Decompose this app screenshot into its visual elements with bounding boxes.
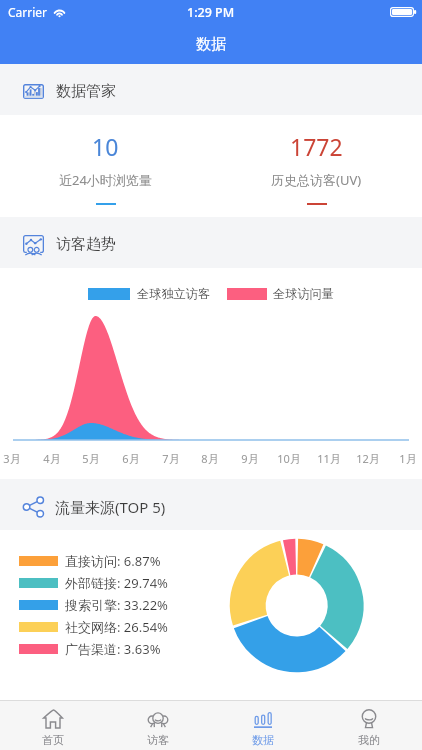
staticText: 全球独立访客 — [137, 286, 211, 301]
staticText: 1月 — [399, 451, 417, 466]
button[interactable]: 1772 — [211, 115, 422, 217]
staticText: 9月 — [241, 451, 259, 466]
staticText: 直接访问: 6.87% — [65, 552, 161, 570]
staticText: 全球访问量 — [273, 286, 334, 301]
button[interactable]: 访客 — [105, 701, 210, 750]
staticText: 搜索引擎: 33.22% — [65, 596, 168, 614]
staticText: 1772 — [290, 131, 343, 162]
staticText: 数据 — [196, 35, 226, 54]
staticText: 首页 — [42, 733, 64, 747]
staticText: 我的 — [358, 733, 380, 747]
staticText: 访客趋势 — [56, 235, 116, 254]
staticText: 10 — [92, 131, 119, 162]
staticText: Carrier — [8, 4, 48, 20]
staticText: 5月 — [82, 451, 100, 466]
button[interactable]: 首页 — [0, 701, 105, 750]
staticText: 4月 — [43, 451, 61, 466]
button[interactable]: 直接访问: 6.87% — [19, 550, 161, 572]
staticText: 3月 — [3, 451, 21, 466]
staticText: 流量来源(TOP 5) — [55, 497, 166, 517]
staticText: 12月 — [356, 451, 380, 466]
button[interactable]: 外部链接: 29.74% — [19, 572, 168, 594]
button[interactable]: 10 — [0, 115, 211, 217]
staticText: 1:29 PM — [187, 4, 235, 21]
button[interactable]: 流量来源(TOP 5) — [0, 479, 422, 530]
staticText: 6月 — [122, 451, 140, 466]
button[interactable]: 我的 — [316, 701, 422, 750]
staticText: 外部链接: 29.74% — [65, 574, 168, 592]
staticText: 历史总访客(UV) — [271, 171, 362, 189]
staticText: 广告渠道: 3.63% — [65, 640, 161, 658]
staticText: 社交网络: 26.54% — [65, 618, 168, 636]
button[interactable]: 搜索引擎: 33.22% — [19, 594, 168, 616]
staticText: 近24小时浏览量 — [59, 171, 152, 189]
staticText: 8月 — [201, 451, 219, 466]
staticText: 数据管家 — [56, 82, 116, 101]
button[interactable]: 数据管家 — [0, 64, 422, 115]
staticText: 数据 — [252, 733, 274, 747]
staticText: 访客 — [147, 733, 169, 747]
button[interactable]: 数据 — [210, 701, 316, 750]
button[interactable]: 社交网络: 26.54% — [19, 616, 168, 638]
staticText: 10月 — [277, 451, 301, 466]
button[interactable]: 广告渠道: 3.63% — [19, 638, 161, 660]
button[interactable]: 访客趋势 — [0, 217, 422, 268]
staticText: 7月 — [162, 451, 180, 466]
staticText: 11月 — [317, 451, 341, 466]
